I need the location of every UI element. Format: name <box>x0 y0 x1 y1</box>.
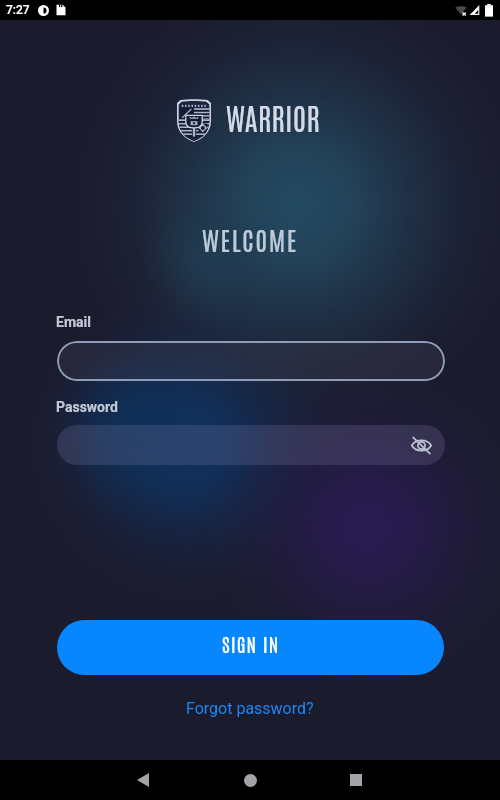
button[interactable]: Email field <box>57 341 445 381</box>
staticText: 7:27 <box>6 3 30 17</box>
button[interactable]: SIGN IN <box>57 620 444 675</box>
staticText: Password <box>56 399 118 415</box>
button[interactable]: Back <box>123 760 163 800</box>
button[interactable]: Password field <box>57 425 445 465</box>
button[interactable]: Show password <box>405 429 437 461</box>
button[interactable]: Forgot password? <box>180 696 320 721</box>
staticText: SIGN IN <box>222 631 280 656</box>
button[interactable]: Recents <box>336 760 376 800</box>
button[interactable]: Home <box>230 760 270 800</box>
staticText: Email <box>56 314 91 330</box>
staticText: Forgot password? <box>186 699 314 718</box>
staticText: WARRIOR <box>226 99 321 137</box>
staticText: WELCOME <box>0 222 500 256</box>
